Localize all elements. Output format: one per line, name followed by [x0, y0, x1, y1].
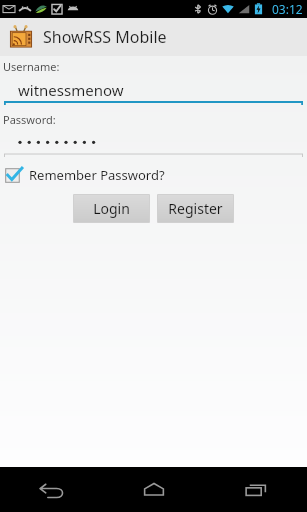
staticText: Password:	[3, 112, 56, 127]
button[interactable]: Login	[73, 194, 150, 223]
staticText: 03:12	[272, 1, 303, 17]
staticText: Register	[168, 199, 223, 218]
staticText: ShowRSS Mobile	[43, 26, 167, 48]
button[interactable]: Back	[0, 467, 103, 512]
button[interactable]: Register	[157, 194, 234, 223]
button[interactable]: Recent apps	[205, 467, 307, 512]
button[interactable]: witnessmenow	[4, 79, 303, 106]
button[interactable]	[4, 131, 303, 158]
staticText: witnessmenow	[18, 80, 124, 100]
button[interactable]: Home	[103, 467, 205, 512]
staticText: Username:	[3, 59, 60, 74]
staticText: Remember Password?	[29, 166, 165, 184]
staticText: Login	[93, 199, 130, 218]
button[interactable]: Remember Password?	[5, 166, 165, 184]
